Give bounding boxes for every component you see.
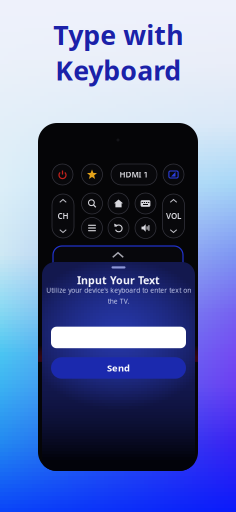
- staticText: Input Your Text: [77, 273, 160, 287]
- button[interactable]: CH: [52, 194, 74, 238]
- button[interactable]: Search: [81, 193, 102, 214]
- button[interactable]: Send: [51, 357, 186, 379]
- staticText: Type with Keyboard: [53, 17, 183, 88]
- staticText: Utilize your device's keyboard to enter …: [46, 286, 191, 306]
- button[interactable]: Mute: [135, 217, 156, 238]
- button[interactable]: Power: [52, 164, 73, 185]
- staticText: HDMI 1: [119, 169, 148, 180]
- button[interactable]: Menu: [81, 217, 102, 238]
- staticText: VOL: [166, 211, 181, 221]
- button[interactable]: Back: [108, 217, 129, 238]
- button[interactable]: Keyboard: [135, 193, 156, 214]
- staticText: CH: [57, 211, 68, 221]
- button[interactable]: Expand keyboard: [103, 248, 133, 262]
- button[interactable]: Home: [108, 193, 129, 214]
- staticText: Send: [107, 362, 130, 374]
- button[interactable]: VOL: [162, 194, 184, 238]
- button[interactable]: Screen mirroring: [163, 164, 184, 185]
- button[interactable]: Favourites: [81, 164, 102, 185]
- button[interactable]: HDMI 1: [111, 164, 157, 185]
